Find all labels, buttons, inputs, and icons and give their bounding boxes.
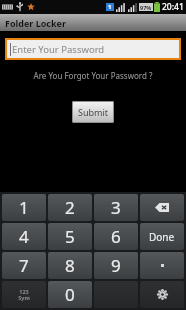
staticText: 9 <box>111 254 121 277</box>
button[interactable]: 1 <box>2 194 46 221</box>
button[interactable]: Settings <box>140 281 184 308</box>
staticText: Enter Your Password <box>12 43 105 56</box>
staticText: 123 Sym <box>18 288 30 302</box>
button[interactable]: Enter Your Password <box>7 40 179 58</box>
staticText: 4 <box>19 225 29 248</box>
staticText: 0 <box>65 283 75 306</box>
button[interactable]: 4 <box>2 223 46 250</box>
staticText: Folder Locker <box>5 17 66 29</box>
staticText: Submit <box>78 106 109 118</box>
staticText: 8 <box>65 254 75 277</box>
staticText: Are You Forgot Your Password ? <box>0 70 186 81</box>
button[interactable]: 0 <box>48 281 92 308</box>
button[interactable]: Submit <box>72 101 114 123</box>
button[interactable]: 7 <box>2 252 46 279</box>
staticText: 5 <box>65 225 75 248</box>
button[interactable]: 6 <box>94 223 138 250</box>
staticText: Done <box>149 230 175 244</box>
button[interactable]: 5 <box>48 223 92 250</box>
staticText: 97% <box>140 4 152 11</box>
staticText: 1 <box>108 3 112 11</box>
button[interactable]: Period <box>140 252 184 279</box>
staticText: 20:41 <box>162 1 184 13</box>
staticText: 6 <box>111 225 121 248</box>
button[interactable]: 2 <box>48 194 92 221</box>
button[interactable]: 123 Sym <box>2 281 46 308</box>
button[interactable]: 9 <box>94 252 138 279</box>
staticText: 7 <box>19 254 29 277</box>
staticText: 1 <box>19 196 29 219</box>
staticText: 3 <box>111 196 121 219</box>
staticText: 2 <box>65 196 75 219</box>
button[interactable]: 3 <box>94 194 138 221</box>
button[interactable]: 8 <box>48 252 92 279</box>
button[interactable]: Done <box>140 223 184 250</box>
button[interactable]: Backspace <box>140 194 184 221</box>
